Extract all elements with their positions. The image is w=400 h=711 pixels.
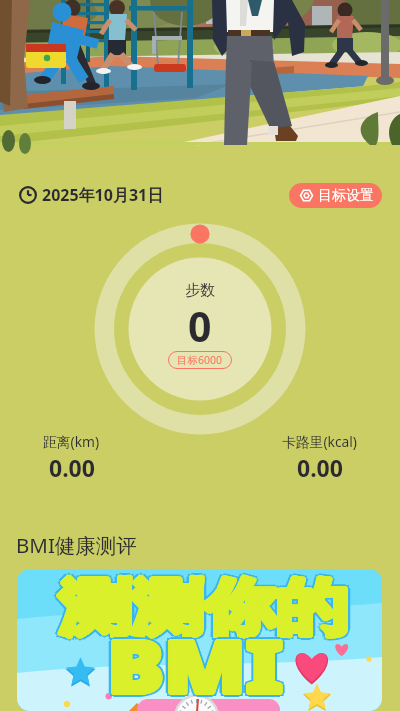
staticText: BMI [102,615,278,711]
staticText: BMI [110,616,286,711]
staticText: BMI [103,618,279,711]
staticText: BMI [108,612,284,711]
staticText: 距离(km) [43,432,100,451]
staticText: BMI [107,619,283,711]
staticText: 测测你的 [61,573,349,647]
staticText: 测测你的 [64,572,352,646]
staticText: 测测你的 [60,572,348,646]
staticText: 测测你的 [61,572,349,646]
staticText: BMI [103,616,279,711]
staticText: BMI [109,614,285,711]
staticText: 测测你的 [62,572,350,646]
staticText: 测测你的 [59,574,347,648]
staticText: 测测你的 [60,575,348,649]
staticText: 测测你的 [65,571,353,645]
staticText: BMI [110,614,286,711]
staticText: BMI [109,615,285,711]
staticText: 目标设置 [318,187,374,205]
staticText: BMI [105,616,281,711]
staticText: 测测你的 [56,574,344,648]
staticText: BMI [110,612,286,711]
staticText: 测测你的 [61,574,349,648]
staticText: BMI [105,614,281,711]
staticText: 测测你的 [60,573,348,647]
staticText: BMI [106,615,282,711]
staticText: BMI健康测评 [16,531,137,559]
staticText: 测测你的 [55,571,343,645]
staticText: 测测你的 [60,569,348,641]
staticText: BMI [106,614,282,711]
staticText: 目标6000 [177,353,223,367]
staticText: BMI [107,616,283,711]
staticText: 测测你的 [60,569,348,643]
staticText: BMI [108,618,284,711]
staticText: 测测你的 [59,569,347,643]
staticText: 测测你的 [58,571,345,645]
staticText: 0.00 [297,452,343,483]
staticText: BMI [108,617,284,711]
staticText: BMI [108,615,284,711]
staticText: BMI [103,614,279,711]
staticText: 测测你的 [64,570,352,644]
staticText: 测测你的 [61,570,349,644]
staticText: BMI [109,616,285,711]
staticText: BMI [107,611,283,710]
staticText: BMI [107,613,283,711]
staticText: 步数 [185,281,215,300]
staticText: 测测你的 [59,573,347,647]
staticText: BMI [108,614,284,711]
staticText: BMI [110,618,286,711]
button[interactable]: 目标设置 [289,183,382,208]
staticText: 测测你的 [60,570,348,644]
staticText: 测测你的 [56,569,344,642]
staticText: 测测你的 [59,572,347,646]
staticText: BMI [107,617,283,711]
staticText: BMI [108,613,284,711]
staticText: 测测你的 [56,572,344,646]
staticText: BMI [103,612,279,711]
staticText: 测测你的 [58,570,345,644]
staticText: BMI [107,614,283,711]
staticText: 2025年10月31日 [42,184,164,206]
staticText: 测测你的 [59,571,347,645]
staticText: 测测你的 [61,569,349,643]
staticText: BMI [105,615,281,711]
staticText: 测测你的 [64,569,352,642]
staticText: 测测你的 [61,569,349,642]
staticText: BMI [106,612,282,711]
staticText: BMI [106,617,282,711]
staticText: BMI [107,615,283,711]
staticText: 测测你的 [61,571,349,645]
staticText: 测测你的 [59,569,347,642]
staticText: BMI [106,616,282,711]
staticText: 测测你的 [62,570,350,644]
staticText: 测测你的 [60,571,348,645]
staticText: BMI [112,615,288,711]
staticText: BMI [106,618,282,711]
staticText: 测测你的 [59,570,347,644]
staticText: BMI [108,616,284,711]
staticText: 测测你的 [56,570,344,644]
staticText: BMI [106,613,282,711]
button[interactable]: 测测你的 [17,569,382,711]
staticText: 0 [188,298,212,354]
staticText: 测测你的 [62,571,350,645]
staticText: 测测你的 [64,574,352,648]
staticText: 测测你的 [58,572,345,646]
staticText: 0.00 [49,452,95,483]
staticText: 卡路里(kcal) [282,432,357,451]
